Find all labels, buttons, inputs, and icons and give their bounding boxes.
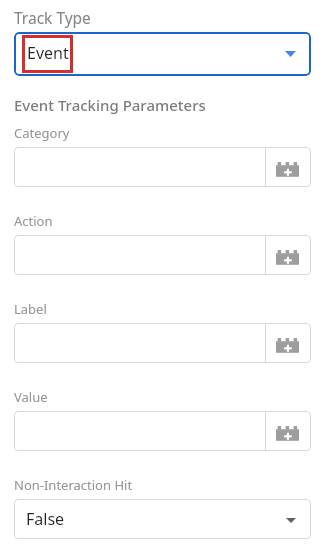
staticText: Label [14,300,47,318]
button[interactable]: Insert variable [266,323,311,363]
staticText: Action [14,212,53,230]
staticText: Track Type [14,7,91,28]
button[interactable]: Insert variable [14,235,311,275]
other: Open track type menu [285,51,296,57]
other: Open value menu [286,518,296,523]
staticText: Event Tracking Parameters [14,95,206,115]
staticText: Non-Interaction Hit [14,476,133,494]
button[interactable]: Insert variable [266,235,311,275]
button[interactable]: Event [14,32,311,76]
staticText: Value [14,388,48,406]
staticText: False [26,508,65,530]
button[interactable]: Insert variable [14,147,311,187]
button[interactable]: Insert variable [266,147,311,187]
staticText: Category [14,124,70,142]
button[interactable]: Insert variable [14,411,311,451]
button[interactable]: False [14,499,311,539]
button[interactable]: Insert variable [266,411,311,451]
staticText: Event [27,42,69,64]
button[interactable]: Insert variable [14,323,311,363]
